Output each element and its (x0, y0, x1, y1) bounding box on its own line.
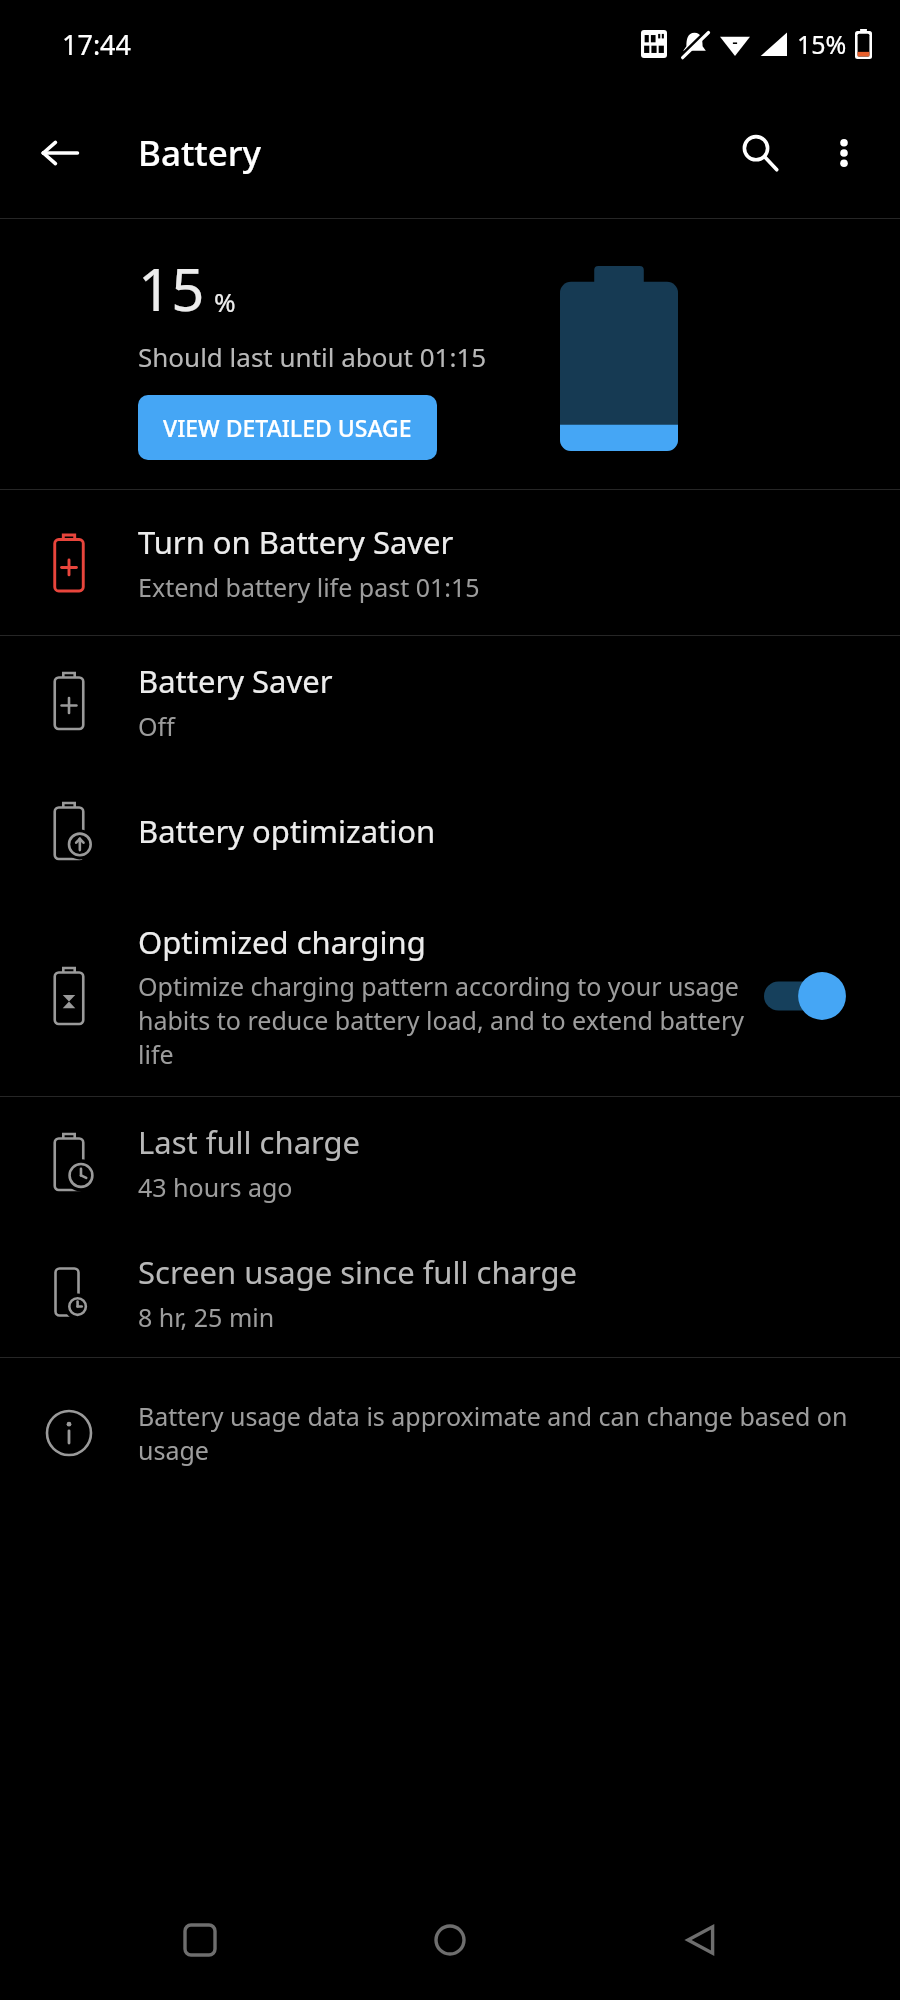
staticText: Should last until about 01:15 (138, 339, 487, 374)
staticText: Turn on Battery Saver (138, 521, 454, 563)
button[interactable]: Home (400, 1890, 500, 1990)
staticText: 17:44 (62, 26, 132, 63)
button[interactable]: Recent apps (150, 1890, 250, 1990)
staticText: VIEW DETAILED USAGE (163, 412, 412, 443)
staticText: Last full charge (138, 1121, 361, 1163)
button[interactable]: VIEW DETAILED USAGE (138, 395, 437, 460)
button[interactable]: Back (22, 115, 98, 191)
staticText: Off (138, 709, 175, 743)
button[interactable]: Search (718, 111, 802, 195)
button[interactable]: Turn on Battery Saver (0, 490, 900, 635)
staticText: Extend battery life past 01:15 (138, 570, 480, 604)
staticText: Screen usage since full charge (138, 1251, 578, 1293)
button[interactable]: Screen usage since full charge (0, 1227, 900, 1357)
staticText: 43 hours ago (138, 1170, 293, 1204)
staticText: Battery optimization (138, 810, 436, 852)
staticText: 15 (138, 249, 205, 328)
button[interactable]: Back (650, 1890, 750, 1990)
button[interactable]: More options (802, 111, 886, 195)
staticText: 8 hr, 25 min (138, 1300, 275, 1334)
staticText: % (214, 284, 236, 319)
staticText: Optimize charging pattern according to y… (138, 969, 744, 1071)
staticText: 15% (797, 27, 847, 61)
button[interactable]: Battery Saver (0, 636, 900, 766)
staticText: Optimized charging (138, 921, 426, 963)
staticText: Battery (138, 129, 262, 177)
staticText: Battery Saver (138, 660, 333, 702)
staticText: Battery usage data is approximate and ca… (138, 1399, 860, 1468)
button[interactable]: Optimized charging (0, 896, 900, 1096)
button[interactable]: Battery optimization (0, 766, 900, 896)
button[interactable]: Last full charge (0, 1097, 900, 1227)
